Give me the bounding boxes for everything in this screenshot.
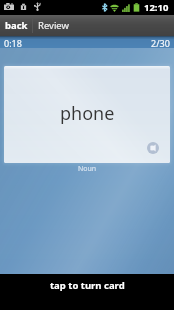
staticText: Noun [0,164,174,174]
staticText: phone [60,101,115,126]
staticText: 2/30 [151,37,170,48]
button[interactable]: Review [33,15,74,36]
staticText: 0:18 [4,37,22,48]
staticText: Review [38,19,69,32]
staticText: tap to turn card [50,279,125,292]
staticText: back [5,19,28,32]
button[interactable] [4,66,170,163]
button[interactable]: back [0,15,32,36]
button[interactable]: Play pronunciation [147,142,159,154]
staticText: 12:10 [144,1,169,14]
button[interactable]: tap to turn card [0,274,174,310]
